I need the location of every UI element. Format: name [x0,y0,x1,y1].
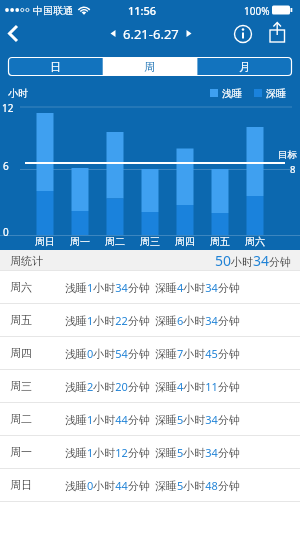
staticText: 6.21-6.27 [123,25,179,43]
staticText: 深睡5小时34分钟 [155,412,240,427]
button[interactable]: 周一 [0,436,300,469]
staticText: 周一 [70,235,90,248]
staticText: 12 [2,101,14,115]
staticText: 0 [3,225,9,239]
staticText: 深睡4小时34分钟 [155,280,240,295]
staticText: 周五 [210,235,230,248]
staticText: 深睡5小时48分钟 [155,478,240,493]
staticText: 深睡6小时34分钟 [155,313,240,328]
staticText: 小时 [8,87,28,100]
button[interactable]: 周日 [0,469,300,502]
button[interactable]: 周六 [0,271,300,304]
staticText: 周三 [140,235,160,248]
staticText: 周日 [35,235,55,248]
button[interactable]: 周五 [0,304,300,337]
button[interactable]: 周三 [0,370,300,403]
staticText: 周三 [10,379,32,393]
staticText: 浅睡2小时20分钟 [65,379,150,394]
staticText: 月 [239,60,250,74]
staticText: 浅睡1小时44分钟 [65,412,150,427]
staticText: 深睡5小时34分钟 [155,445,240,460]
staticText: 深睡4小时11分钟 [155,379,240,394]
staticText: 浅睡1小时22分钟 [65,313,150,328]
staticText: 8 [290,163,296,176]
staticText: 周六 [245,235,265,248]
staticText: 浅睡 [222,87,242,100]
staticText: 目标 [278,149,297,161]
staticText: 周二 [105,235,125,248]
staticText: 周日 [10,478,32,492]
button[interactable] [262,20,292,48]
button[interactable] [2,20,30,48]
button[interactable]: 周四 [0,337,300,370]
button[interactable] [230,20,256,48]
staticText: 周 [144,60,155,74]
staticText: 浅睡0小时54分钟 [65,346,150,361]
staticText: 周二 [10,412,32,426]
staticText: 深睡 [266,87,286,100]
staticText: 浅睡1小时34分钟 [65,280,150,295]
staticText: 周五 [10,313,32,327]
staticText: 周六 [10,280,32,294]
staticText: 深睡7小时45分钟 [155,346,240,361]
staticText: 周一 [10,445,32,459]
button[interactable]: 周二 [0,403,300,436]
staticText: 中国联通 [33,4,73,17]
staticText: 50小时34分钟 [215,251,292,270]
staticText: 周统计 [10,254,43,268]
staticText: 11:56 [128,3,157,18]
button[interactable]: 日 [8,57,102,76]
staticText: 100% [244,4,270,18]
staticText: 浅睡1小时12分钟 [65,445,150,460]
staticText: 6 [3,159,9,173]
button[interactable]: 周 [102,57,197,76]
staticText: 周四 [175,235,195,248]
staticText: 周四 [10,346,32,360]
button[interactable]: 月 [197,57,292,76]
staticText: 浅睡0小时44分钟 [65,478,150,493]
staticText: 日 [50,60,61,74]
